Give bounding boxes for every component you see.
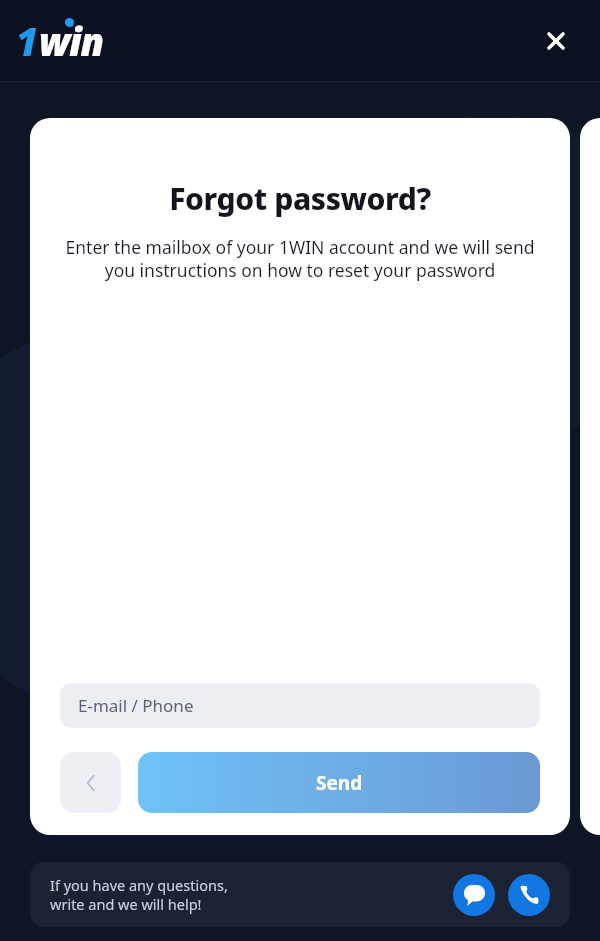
staticText: Forgot password? — [30, 178, 570, 219]
staticText: Send — [316, 770, 363, 796]
staticText: If you have any questions, write and we … — [50, 875, 453, 914]
staticText: 1 — [16, 15, 39, 67]
staticText: E-mail / Phone — [78, 694, 194, 717]
button[interactable]: E-mail / Phone — [60, 683, 540, 728]
button[interactable]: Send — [138, 752, 540, 813]
staticText: Enter the mailbox of your 1WIN account a… — [58, 235, 542, 282]
button[interactable]: Chat with support — [453, 874, 495, 916]
button[interactable]: Close — [534, 19, 578, 63]
button[interactable]: Call support — [508, 874, 550, 916]
button[interactable]: 1 — [16, 15, 104, 67]
button[interactable]: Back — [60, 752, 121, 813]
staticText: win — [39, 15, 104, 67]
